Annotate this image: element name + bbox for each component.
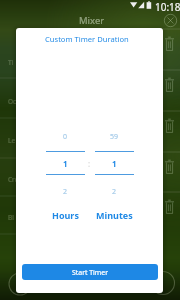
staticText: Cro — [8, 175, 19, 184]
staticText: 2 — [112, 187, 117, 197]
staticText: Bl — [8, 213, 14, 222]
staticText: : — [88, 158, 91, 169]
staticText: 0 — [63, 132, 68, 142]
staticText: Le — [8, 136, 16, 145]
button[interactable]: Start Timer — [22, 264, 158, 280]
staticText: 10:18 — [155, 0, 180, 11]
staticText: Oc — [8, 97, 17, 106]
staticText: Start Timer — [72, 268, 109, 277]
staticText: 2 — [63, 187, 68, 197]
staticText: 59 — [110, 132, 119, 142]
staticText: 1 — [63, 158, 68, 169]
staticText: Hours — [52, 209, 79, 221]
staticText: Mixer — [79, 14, 105, 27]
button[interactable]: Close — [163, 13, 178, 28]
staticText: Custom Timer Duration — [45, 34, 129, 44]
staticText: 1 — [112, 158, 117, 169]
staticText: Ti — [8, 58, 14, 67]
staticText: Minutes — [96, 209, 133, 221]
